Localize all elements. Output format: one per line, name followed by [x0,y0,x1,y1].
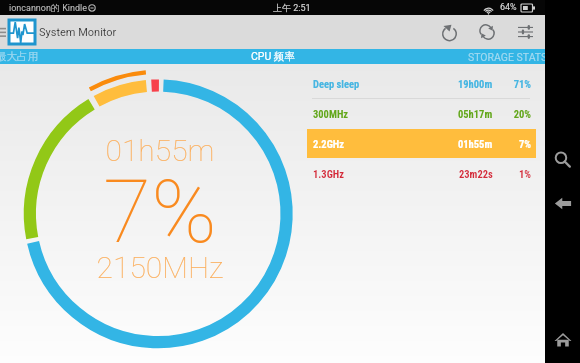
button[interactable]: Refresh [468,15,506,49]
button[interactable]: Reset [430,15,468,49]
button[interactable]: Deep sleep [300,69,545,99]
button[interactable]: 2.2GHz [300,129,545,159]
staticText: 7% [518,138,531,150]
button[interactable]: STORAGE STATS [468,51,548,63]
staticText: Deep sleep [313,78,360,90]
staticText: 2.2GHz [313,138,345,150]
button[interactable]: 300MHz [300,99,545,129]
staticText: 01h55m [10,133,310,168]
staticText: 05h17m [458,108,493,120]
button[interactable]: Menu [0,26,6,39]
staticText: 23m22s [459,168,493,180]
staticText: 19h00m [458,78,493,90]
staticText: 300MHz [313,108,349,120]
staticText: ioncannon的 Kindle [9,2,88,13]
button[interactable]: Settings [506,15,544,49]
staticText: 20% [513,108,531,120]
staticText: 上午 2:51 [273,2,311,13]
staticText: 64% [500,2,517,13]
button[interactable]: 最大占用 [0,50,38,63]
staticText: 2150MHz [10,250,310,285]
button[interactable]: Home [545,322,580,357]
staticText: 7% [10,160,310,263]
staticText: 1% [518,168,531,180]
staticText: 1.3GHz [313,168,345,180]
button[interactable]: 1.3GHz [300,159,545,189]
button[interactable]: CPU 频率 [251,50,295,63]
button[interactable]: Search [545,142,580,177]
staticText: System Monitor [39,26,117,39]
staticText: 71% [513,78,531,90]
staticText: 01h55m [458,138,493,150]
button[interactable]: Back [545,186,580,221]
